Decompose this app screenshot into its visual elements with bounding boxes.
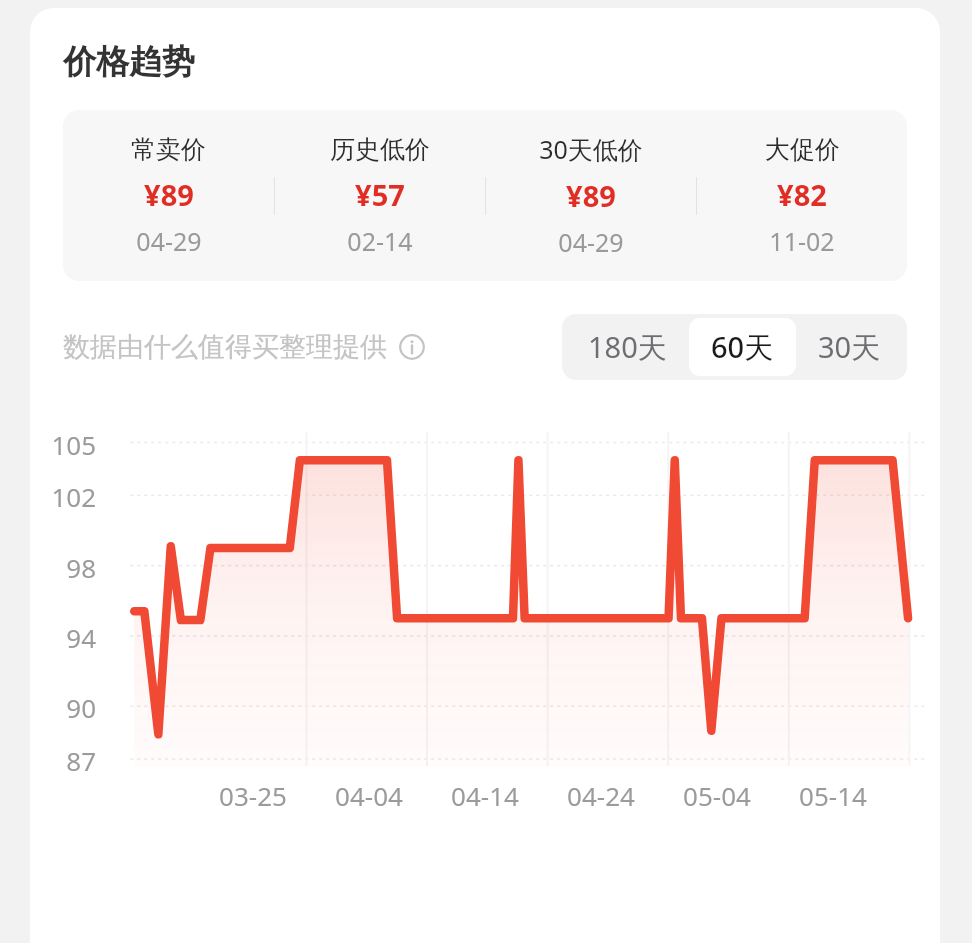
button[interactable]: 30天 [796,318,903,376]
staticText: 105 [51,427,96,462]
staticText: 98 [66,550,96,585]
staticText: 60天 [711,327,774,367]
button[interactable]: 180天 [566,318,689,376]
staticText: 05-04 [683,778,751,813]
staticText: 02-14 [347,224,413,258]
staticText: 04-14 [451,778,519,813]
staticText: ¥89 [144,175,194,214]
button[interactable]: 30天低价 [486,132,696,259]
button[interactable]: 大促价 [697,134,907,258]
staticText: 04-24 [567,778,635,813]
staticText: 04-04 [335,778,403,813]
staticText: 102 [51,479,96,514]
staticText: 11-02 [769,224,835,258]
staticText: 04-29 [136,224,202,258]
staticText: 数据由什么值得买整理提供 [63,330,387,364]
staticText: ¥57 [355,175,405,214]
staticText: 常卖价 [131,134,206,165]
staticText: 90 [66,690,96,725]
staticText: ¥89 [566,176,616,215]
staticText: 大促价 [765,134,840,165]
staticText: 30天 [818,327,881,367]
staticText: 05-14 [799,778,867,813]
staticText: 87 [66,743,96,778]
staticText: 历史低价 [330,134,430,165]
button[interactable]: 历史低价 [275,134,485,258]
staticText: 04-29 [558,225,624,259]
staticText: 94 [66,620,96,655]
button[interactable]: 数据来源说明 [397,332,427,362]
staticText: ¥82 [777,175,827,214]
button[interactable]: 60天 [689,318,796,376]
staticText: 03-25 [219,778,287,813]
staticText: 30天低价 [539,132,643,166]
staticText: 价格趋势 [63,41,195,83]
button[interactable]: 常卖价 [63,134,274,258]
staticText: 180天 [588,327,667,367]
